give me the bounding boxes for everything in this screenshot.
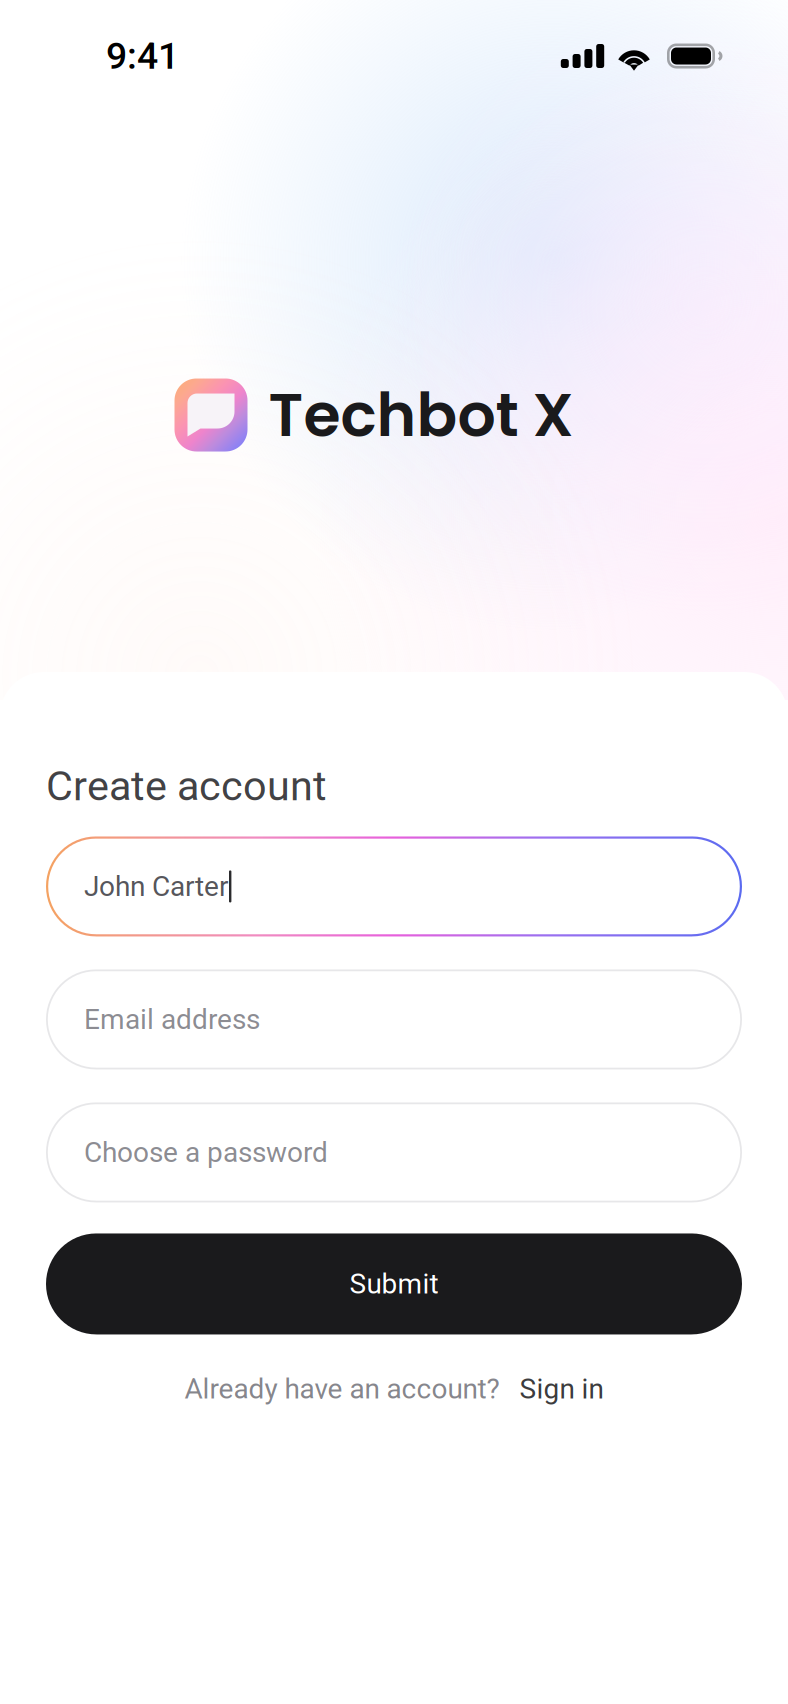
- staticText: John Carter: [84, 870, 228, 903]
- staticText: 9:41: [106, 34, 179, 78]
- staticText: Sign in: [519, 1372, 603, 1405]
- button[interactable]: Sign in: [499, 1372, 603, 1405]
- staticText: Already have an account?: [184, 1372, 499, 1405]
- staticText: Submit: [349, 1267, 438, 1300]
- staticText: Techbot X: [268, 373, 573, 457]
- staticText: Create account: [46, 762, 327, 810]
- button[interactable]: Submit: [46, 1233, 742, 1334]
- staticText: Choose a password: [84, 1136, 328, 1169]
- staticText: Email address: [84, 1003, 260, 1036]
